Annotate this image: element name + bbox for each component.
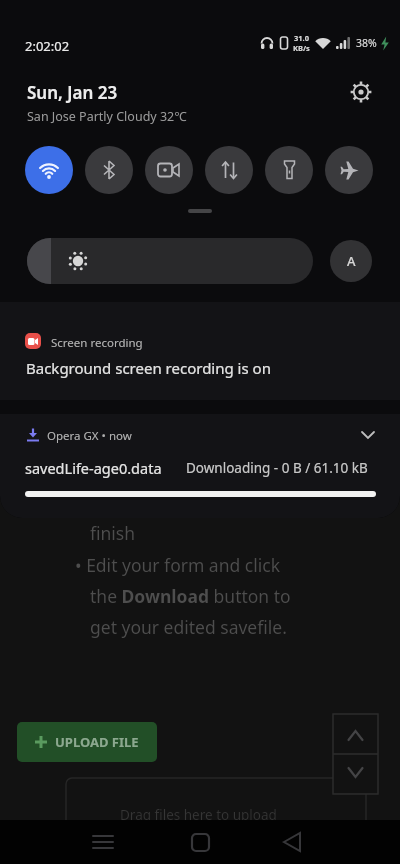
button[interactable]: [272, 820, 312, 864]
staticText: get your edited savefile.: [90, 615, 287, 639]
staticText: 31.0: [294, 33, 309, 43]
button[interactable]: [333, 754, 378, 794]
staticText: savedLife-age0.data: [25, 458, 162, 478]
button[interactable]: [27, 238, 313, 284]
staticText: 38%: [356, 36, 377, 50]
staticText: A: [347, 252, 356, 270]
button[interactable]: [348, 79, 374, 105]
button[interactable]: [205, 146, 253, 194]
button[interactable]: [333, 714, 378, 754]
button[interactable]: [180, 820, 220, 864]
button[interactable]: [83, 820, 123, 864]
staticText: Opera GX • now: [47, 428, 132, 444]
staticText: Screen recording: [51, 335, 143, 351]
staticText: Background screen recording is on: [26, 358, 271, 378]
staticText: Downloading - 0 B / 61.10 kB: [186, 459, 368, 477]
button[interactable]: [145, 146, 193, 194]
button[interactable]: Screen recording: [0, 302, 400, 400]
staticText: San Jose Partly Cloudy 32℃: [27, 108, 187, 125]
button[interactable]: UPLOAD FILE: [17, 722, 157, 762]
button[interactable]: [25, 146, 73, 194]
button[interactable]: A: [330, 240, 372, 282]
staticText: finish: [90, 521, 136, 545]
staticText: Sun, Jan 23: [27, 81, 118, 104]
button[interactable]: [265, 146, 313, 194]
staticText: KB/s: [293, 43, 310, 53]
staticText: • Edit your form and click: [75, 553, 280, 577]
staticText: 2:02:02: [25, 37, 70, 55]
staticText: Drag files here to upload: [120, 806, 277, 824]
staticText: the Download button to: [90, 584, 291, 608]
button[interactable]: [325, 146, 373, 194]
button[interactable]: Opera GX • now: [0, 414, 400, 518]
button[interactable]: [85, 146, 133, 194]
staticText: UPLOAD FILE: [55, 733, 139, 751]
